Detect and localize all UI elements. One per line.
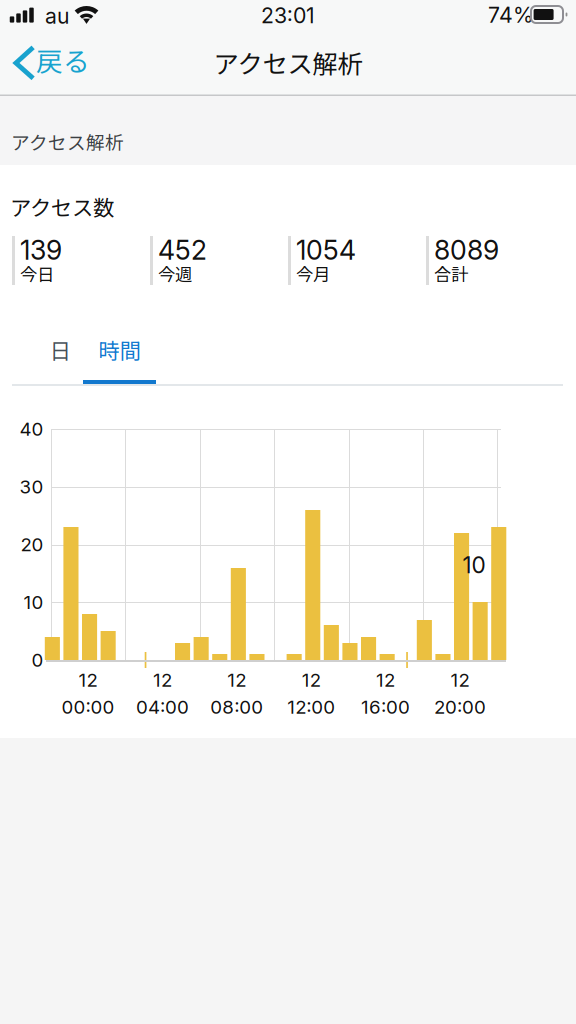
staticText: アクセス解析: [11, 128, 124, 155]
staticText: 12: [450, 669, 469, 691]
staticText: 12: [153, 669, 172, 691]
staticText: 0: [32, 649, 44, 671]
staticText: 20: [21, 533, 44, 556]
staticText: 戻る: [36, 40, 90, 79]
staticText: 日: [49, 334, 70, 365]
staticText: 40: [20, 418, 44, 440]
staticText: 20:00: [434, 696, 486, 718]
button[interactable]: 日: [37, 334, 83, 384]
staticText: 23:01: [261, 2, 315, 28]
staticText: アクセス数: [10, 191, 114, 222]
staticText: 12: [227, 669, 246, 691]
staticText: 時間: [98, 334, 140, 365]
staticText: 今週: [158, 261, 192, 286]
staticText: 今月: [296, 261, 330, 286]
staticText: 30: [20, 475, 44, 498]
staticText: 12: [78, 669, 97, 691]
staticText: 00:00: [61, 696, 114, 718]
staticText: 139: [20, 234, 62, 266]
button[interactable]: 戻る: [0, 35, 92, 96]
staticText: 1054: [296, 234, 356, 266]
staticText: 10: [24, 591, 44, 614]
staticText: 今日: [20, 261, 54, 286]
staticText: 8089: [434, 234, 499, 266]
staticText: 10: [462, 551, 485, 579]
staticText: 12: [302, 669, 321, 691]
button[interactable]: 時間: [83, 334, 156, 384]
staticText: 452: [158, 234, 207, 266]
staticText: 08:00: [210, 696, 263, 718]
staticText: 04:00: [136, 696, 189, 718]
staticText: 12:00: [287, 696, 335, 718]
staticText: 74%: [488, 2, 534, 28]
staticText: 合計: [434, 261, 468, 286]
staticText: 16:00: [361, 696, 410, 718]
staticText: au: [45, 3, 70, 29]
staticText: アクセス解析: [213, 44, 362, 81]
staticText: 12: [376, 669, 395, 691]
